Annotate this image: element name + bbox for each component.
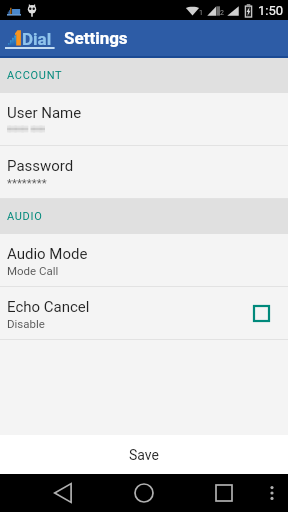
staticText: Save <box>129 447 159 463</box>
button[interactable]: Password <box>0 146 288 198</box>
staticText: Settings <box>64 28 128 48</box>
button[interactable]: Recent apps <box>200 474 248 512</box>
button[interactable]: Save <box>0 435 288 474</box>
staticText: 1 <box>199 9 203 17</box>
button[interactable]: Home <box>120 474 168 512</box>
staticText: ******** <box>7 176 47 189</box>
staticText: Audio Mode <box>7 245 88 263</box>
staticText: Dial <box>22 29 52 49</box>
button[interactable]: Back <box>39 474 87 512</box>
button[interactable]: User Name <box>0 93 288 145</box>
staticText: Disable <box>7 317 45 330</box>
button[interactable]: More options <box>258 474 286 512</box>
staticText: 2 <box>220 9 224 17</box>
staticText: Mode Call <box>7 264 59 277</box>
staticText: User Name <box>7 104 82 122</box>
staticText: AUDIO <box>7 210 43 223</box>
staticText: ACCOUNT <box>7 69 63 82</box>
button[interactable]: Audio Mode <box>0 234 288 286</box>
staticText: Password <box>7 157 74 175</box>
staticText: Echo Cancel <box>7 298 90 316</box>
button[interactable]: Echo Cancel <box>0 287 288 339</box>
staticText: 1:50 <box>258 3 284 18</box>
